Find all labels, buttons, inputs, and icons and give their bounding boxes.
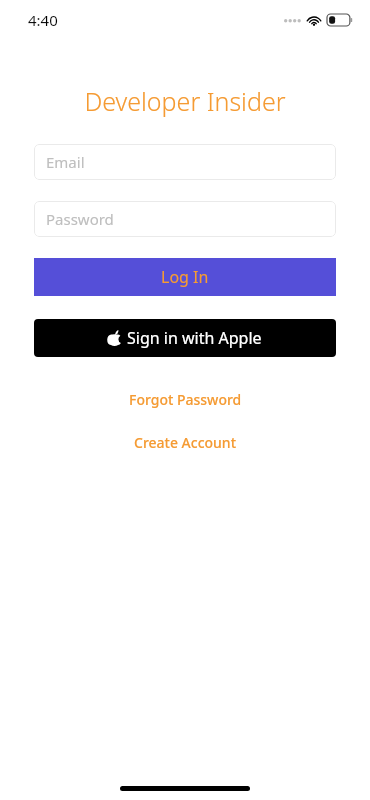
button[interactable]: Log In xyxy=(34,258,336,296)
staticText: Sign in with Apple xyxy=(127,327,262,349)
button[interactable]: Sign in with Apple xyxy=(34,319,336,357)
staticText: Password xyxy=(46,209,114,229)
staticText: Create Account xyxy=(134,433,237,452)
button[interactable]: Forgot Password xyxy=(119,387,252,412)
staticText: Log In xyxy=(161,266,209,288)
button[interactable]: Create Account xyxy=(124,430,247,455)
staticText: Forgot Password xyxy=(129,390,242,409)
button[interactable]: Password xyxy=(34,201,336,237)
staticText: Email xyxy=(46,152,85,172)
staticText: 4:40 xyxy=(28,10,58,30)
staticText: Developer Insider xyxy=(84,84,286,118)
button[interactable]: Email xyxy=(34,144,336,180)
